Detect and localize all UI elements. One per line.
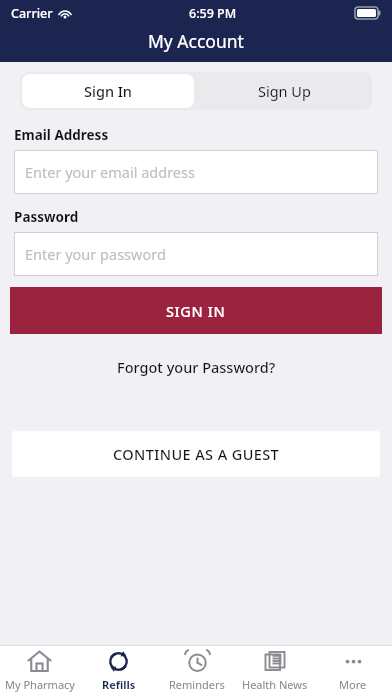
staticText: SIGN IN	[166, 301, 226, 321]
staticText: More	[339, 677, 367, 692]
button[interactable]: Sign In	[22, 74, 194, 108]
button[interactable]: More	[314, 645, 392, 696]
button[interactable]: Sign Up	[196, 72, 372, 110]
button[interactable]: Enter your email address	[14, 150, 378, 194]
staticText: My Pharmacy	[5, 677, 75, 692]
staticText: Carrier	[11, 5, 53, 22]
button[interactable]: Refills	[79, 645, 158, 696]
staticText: Password	[14, 208, 79, 226]
staticText: CONTINUE AS A GUEST	[113, 444, 280, 464]
button[interactable]: SIGN IN	[10, 287, 382, 334]
staticText: Email Address	[14, 126, 109, 144]
button[interactable]: Reminders	[158, 645, 236, 696]
button[interactable]: My Pharmacy	[0, 645, 79, 696]
staticText: 6:59 PM	[189, 5, 237, 22]
staticText: Sign Up	[258, 81, 311, 101]
staticText: Health News	[242, 677, 308, 692]
staticText: Refills	[102, 677, 136, 692]
button[interactable]: Health News	[236, 645, 314, 696]
staticText: Reminders	[169, 677, 225, 692]
button[interactable]: CONTINUE AS A GUEST	[12, 431, 380, 477]
button[interactable]: Enter your password	[14, 232, 378, 276]
button[interactable]: Forgot your Password?	[113, 353, 280, 381]
staticText: My Account	[148, 29, 244, 53]
staticText: Sign In	[84, 81, 132, 101]
staticText: Enter your password	[25, 244, 166, 264]
staticText: Enter your email address	[25, 162, 195, 182]
